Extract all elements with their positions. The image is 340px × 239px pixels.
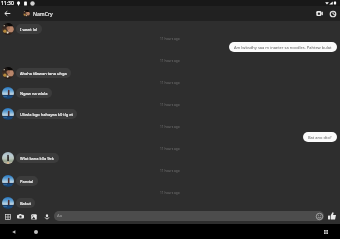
- staticText: 11:30: [1, 0, 14, 6]
- button[interactable]: Call: [326, 7, 339, 20]
- button[interactable]: Back: [6, 224, 21, 239]
- staticText: Ahaha tilawan tana uhga: [20, 71, 67, 76]
- button[interactable]: Uliwla bgo hahayea k0 tlg et: [2, 108, 77, 120]
- staticText: Ngaw na wlala: [20, 91, 48, 96]
- button[interactable]: Parotal: [2, 175, 38, 187]
- button[interactable]: Back: [0, 6, 15, 21]
- button[interactable]: Ahaha tilawan tana uhga: [2, 67, 71, 79]
- button[interactable]: Ngaw na wlala: [2, 87, 52, 99]
- staticText: I want lol: [20, 27, 38, 32]
- staticText: Uliwla bgo hahayea k0 tlg et: [20, 112, 73, 117]
- staticText: Bat ano dto?: [308, 135, 332, 140]
- staticText: 11 hours ago: [160, 81, 180, 85]
- staticText: Bakut: [20, 201, 31, 206]
- button[interactable]: Bakut: [2, 197, 35, 209]
- button[interactable]: Aa: [54, 211, 324, 221]
- staticText: 11 hours ago: [160, 125, 180, 129]
- staticText: 11 hours ago: [160, 59, 180, 63]
- staticText: 11 hours ago: [160, 103, 180, 107]
- button[interactable]: Home: [28, 224, 43, 239]
- button[interactable]: Gallery: [27, 210, 40, 223]
- staticText: Aa: [57, 213, 63, 219]
- staticText: NamCry: [33, 10, 53, 17]
- staticText: Parotal: [20, 179, 34, 184]
- staticText: 11 hours ago: [160, 37, 180, 41]
- staticText: 11 hours ago: [160, 147, 180, 151]
- button[interactable]: Send like: [326, 210, 338, 222]
- staticText: Am lwbsdhy saa m inaeter sa noodles. Pah…: [234, 45, 332, 50]
- button[interactable]: Bat ano dto?: [303, 132, 337, 142]
- button[interactable]: Video call: [313, 7, 326, 20]
- button[interactable]: Recents: [318, 224, 333, 239]
- staticText: 11 hours ago: [160, 191, 180, 195]
- staticText: Wlat kana k0a 9ek: [20, 156, 55, 161]
- button[interactable]: Apps: [1, 210, 14, 223]
- button[interactable]: Wlat kana k0a 9ek: [2, 152, 59, 164]
- button[interactable]: Voice message: [40, 210, 53, 223]
- button[interactable]: Camera: [14, 210, 27, 223]
- button[interactable]: I want lol: [2, 23, 42, 35]
- button[interactable]: NamCry: [23, 10, 313, 17]
- staticText: 11 hours ago: [160, 169, 180, 173]
- button[interactable]: Am lwbsdhy saa m inaeter sa noodles. Pah…: [229, 42, 337, 52]
